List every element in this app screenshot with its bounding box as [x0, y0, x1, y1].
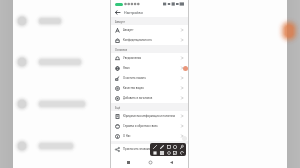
button[interactable]: Tool 5 — [179, 144, 184, 149]
button[interactable]: Конфиденциальность — [111, 35, 188, 45]
staticText: Качество видео — [123, 86, 144, 90]
staticText: Пригласить знакомых — [123, 147, 153, 151]
button[interactable]: Tool 2 — [159, 144, 164, 149]
staticText: Юридическая информация и политика — [123, 114, 176, 118]
button[interactable]: Уведомления — [111, 53, 188, 63]
staticText: Аккаунт — [123, 28, 134, 32]
button[interactable]: Tool 9 — [172, 150, 177, 155]
button[interactable]: Tool 4 — [172, 144, 177, 149]
button[interactable]: Tool 7 — [159, 150, 164, 155]
staticText: Очистить память — [123, 76, 146, 80]
staticText: Основное — [115, 48, 128, 51]
button[interactable]: Аккаунт — [111, 25, 188, 35]
button[interactable]: Recents — [124, 158, 132, 166]
button[interactable]: Tool 1 — [152, 144, 157, 149]
staticText: Язык — [123, 66, 130, 70]
button[interactable]: Tool 10 — [179, 150, 184, 155]
button[interactable]: Очистить память — [111, 73, 188, 83]
staticText: О Нас — [123, 134, 131, 138]
button[interactable]: Tool 8 — [166, 150, 171, 155]
button[interactable]: Tool 3 — [166, 144, 171, 149]
button[interactable]: Back — [114, 9, 121, 16]
staticText: Конфиденциальность — [123, 38, 153, 42]
staticText: Аккаунт — [115, 20, 125, 23]
staticText: Уведомления — [123, 56, 142, 60]
staticText: Настройки — [124, 10, 143, 15]
button[interactable]: Home — [146, 158, 154, 166]
button[interactable]: Back — [167, 158, 175, 166]
button[interactable]: Tool 6 — [152, 150, 157, 155]
staticText: Справка и обратная связь — [123, 124, 158, 128]
staticText: Добавить в заголовок — [123, 96, 153, 100]
button[interactable]: Качество видео — [111, 83, 188, 93]
button[interactable]: Справка и обратная связь — [111, 121, 188, 131]
button[interactable]: More — [182, 136, 187, 141]
button[interactable]: Язык — [111, 63, 188, 73]
button[interactable]: Добавить в заголовок — [111, 93, 188, 103]
staticText: Ещё — [115, 106, 121, 109]
button[interactable]: Пригласить знакомых — [111, 144, 188, 154]
button[interactable]: Юридическая информация и политика — [111, 111, 188, 121]
button[interactable]: О Нас — [111, 131, 188, 141]
